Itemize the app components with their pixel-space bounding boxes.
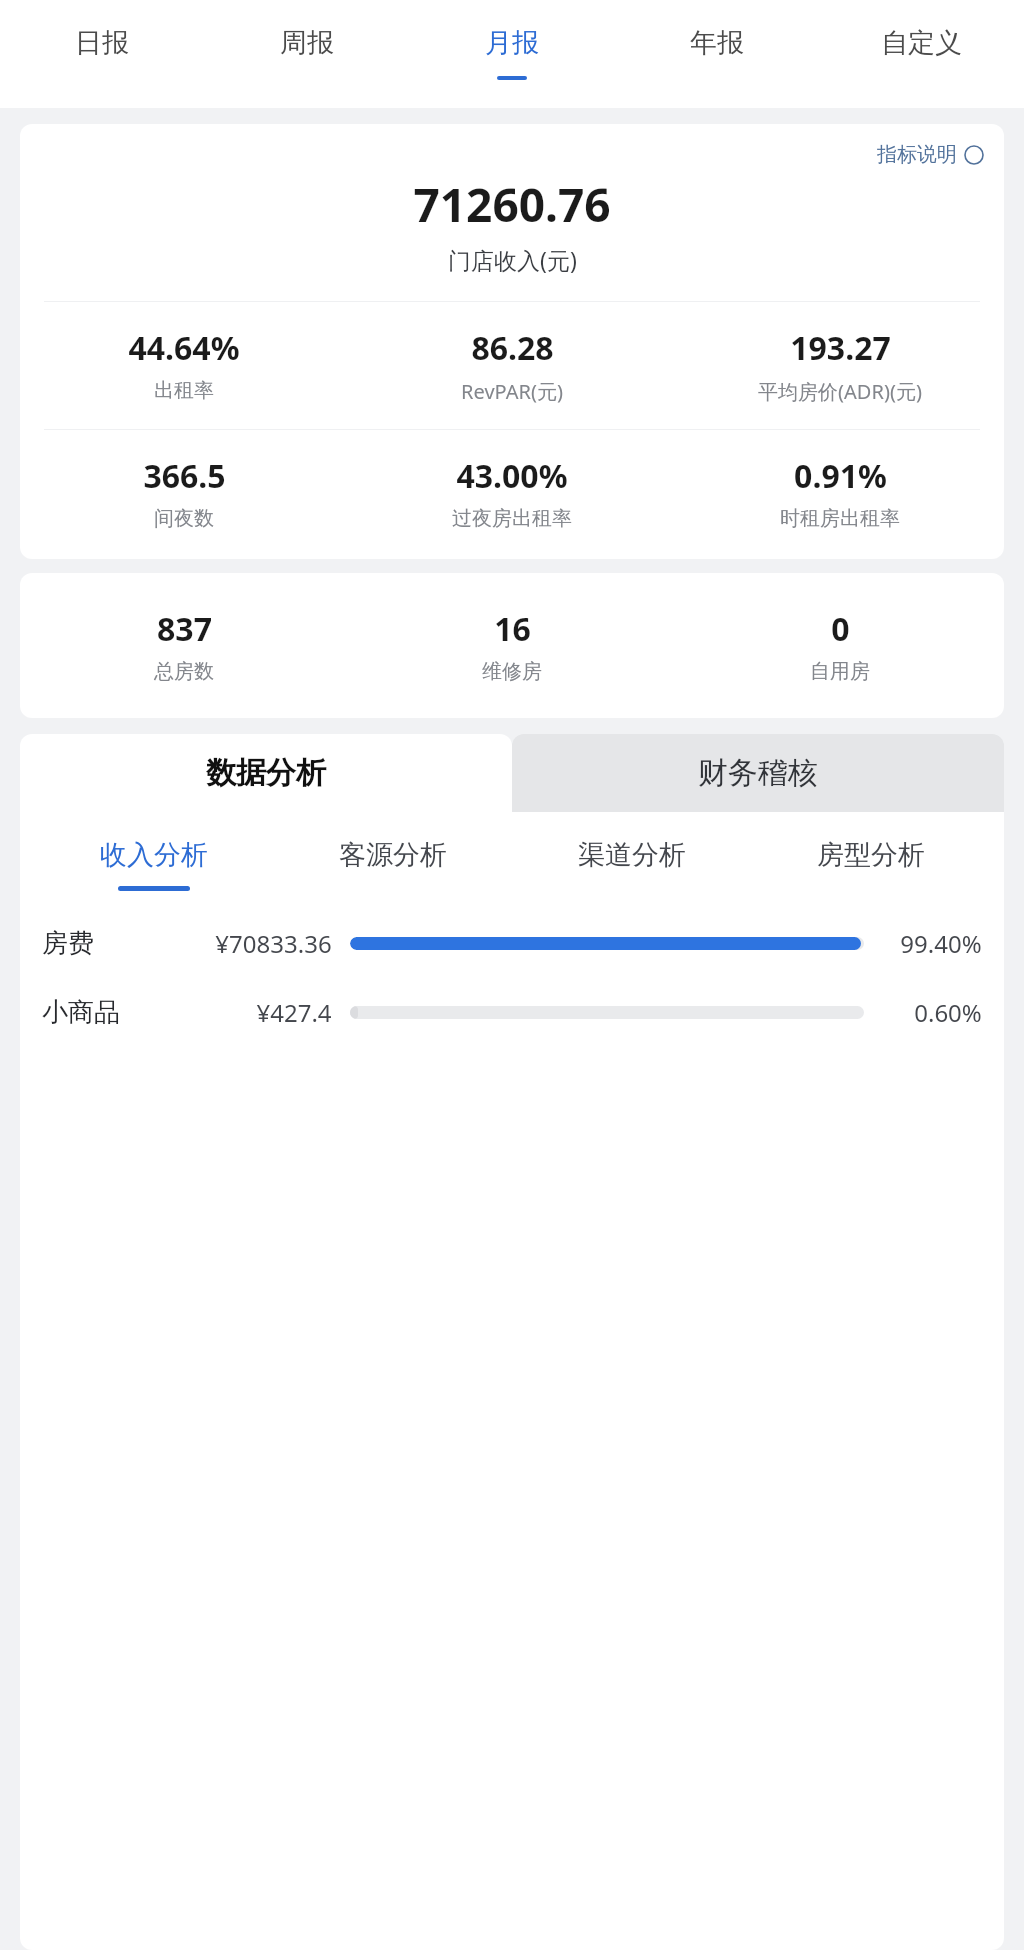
- staticText: 日报: [75, 26, 129, 60]
- staticText: 总房数: [154, 659, 214, 684]
- staticText: 财务稽核: [698, 754, 818, 792]
- staticText: 837: [157, 607, 212, 651]
- staticText: 年报: [690, 26, 744, 60]
- staticText: 366.5: [143, 454, 226, 498]
- staticText: 自定义: [881, 26, 962, 60]
- staticText: 86.28: [471, 326, 554, 370]
- button[interactable]: 86.28: [348, 324, 676, 407]
- button[interactable]: 日报: [0, 0, 204, 108]
- staticText: 收入分析: [100, 838, 208, 872]
- button[interactable]: 年报: [614, 0, 819, 108]
- button[interactable]: 193.27: [676, 324, 1004, 407]
- button[interactable]: 366.5: [20, 452, 348, 533]
- button[interactable]: 43.00%: [348, 452, 676, 533]
- staticText: 平均房价(ADR)(元): [758, 378, 922, 405]
- button[interactable]: 0: [676, 605, 1004, 686]
- staticText: 43.00%: [456, 454, 568, 498]
- button[interactable]: 自定义: [819, 0, 1024, 108]
- button[interactable]: 房型分析: [751, 838, 990, 886]
- staticText: 过夜房出租率: [452, 506, 572, 531]
- staticText: 月报: [485, 26, 539, 60]
- staticText: 时租房出租率: [780, 506, 900, 531]
- staticText: 0: [831, 607, 850, 651]
- staticText: 维修房: [482, 659, 542, 684]
- staticText: RevPAR(元): [461, 378, 563, 405]
- staticText: 小商品: [42, 996, 120, 1029]
- staticText: 0.60%: [914, 996, 982, 1029]
- button[interactable]: 财务稽核: [512, 734, 1004, 812]
- staticText: 16: [494, 607, 531, 651]
- button[interactable]: 指标说明: [871, 136, 990, 173]
- button[interactable]: 月报: [409, 0, 614, 108]
- button[interactable]: 周报: [204, 0, 409, 108]
- staticText: 房费: [42, 927, 94, 960]
- button[interactable]: 收入分析: [34, 838, 273, 891]
- staticText: 房型分析: [817, 838, 925, 872]
- staticText: 0.91%: [794, 454, 887, 498]
- staticText: 44.64%: [128, 326, 240, 370]
- staticText: 门店收入(元): [448, 244, 577, 275]
- staticText: 数据分析: [206, 754, 326, 792]
- staticText: ¥70833.36: [215, 927, 332, 960]
- staticText: 间夜数: [154, 506, 214, 531]
- staticText: 71260.76: [413, 173, 611, 236]
- other: 指标说明: [964, 145, 984, 165]
- button[interactable]: 16: [348, 605, 676, 686]
- staticText: 渠道分析: [578, 838, 686, 872]
- button[interactable]: 小商品: [20, 986, 1004, 1039]
- staticText: 99.40%: [900, 927, 982, 960]
- staticText: 周报: [280, 26, 334, 60]
- staticText: 客源分析: [339, 838, 447, 872]
- staticText: 193.27: [790, 326, 891, 370]
- button[interactable]: 客源分析: [273, 838, 512, 886]
- button[interactable]: 0.91%: [676, 452, 1004, 533]
- button[interactable]: 房费: [20, 917, 1004, 970]
- staticText: ¥427.4: [256, 996, 332, 1029]
- button[interactable]: 44.64%: [20, 324, 348, 405]
- button[interactable]: 837: [20, 605, 348, 686]
- button[interactable]: 数据分析: [20, 734, 512, 812]
- button[interactable]: 渠道分析: [512, 838, 751, 886]
- staticText: 自用房: [810, 659, 870, 684]
- staticText: 指标说明: [877, 142, 957, 167]
- staticText: 出租率: [154, 378, 214, 403]
